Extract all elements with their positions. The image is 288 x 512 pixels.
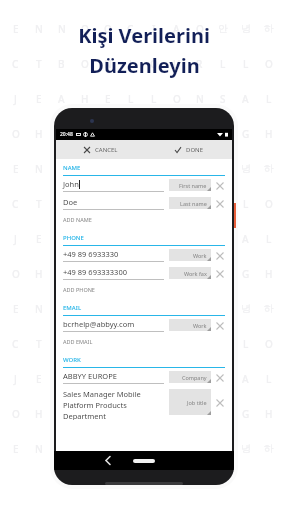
button[interactable]: +49 89 6933330 (63, 246, 225, 264)
staticText: 你 (126, 267, 136, 280)
staticText: O (81, 197, 89, 211)
staticText: 你 (126, 127, 136, 140)
button[interactable]: Company (169, 371, 211, 383)
button[interactable]: Delete field (214, 320, 225, 331)
staticText: L (266, 372, 272, 386)
button[interactable]: ADD NAME (63, 212, 225, 226)
button[interactable]: Doe (63, 194, 225, 212)
staticText: DONE (186, 146, 203, 154)
button[interactable]: First name (169, 179, 211, 191)
button[interactable]: bcrhelp@abbyy.com (63, 316, 225, 334)
button[interactable]: PHONE (63, 229, 225, 246)
button[interactable]: CANCEL (56, 140, 144, 159)
button[interactable]: EMAIL (63, 299, 225, 316)
staticText: J (129, 57, 132, 71)
button[interactable]: ADD PHONE (63, 282, 225, 296)
staticText: O (265, 197, 273, 211)
button[interactable]: Work (169, 319, 211, 331)
staticText: 하 (264, 22, 274, 35)
staticText: R (196, 57, 203, 71)
staticText: O (173, 372, 181, 386)
staticText: O (173, 232, 181, 246)
staticText: Q (81, 302, 89, 316)
button[interactable]: ADD EMAIL (63, 334, 225, 348)
staticText: O (12, 407, 20, 421)
staticText: S (220, 92, 226, 106)
button[interactable]: WORK (63, 351, 225, 368)
button[interactable]: +49 89 693333300 (63, 264, 225, 282)
button[interactable]: John (63, 176, 225, 194)
staticText: Job title (187, 399, 207, 406)
staticText: I (152, 162, 156, 176)
staticText: O (196, 302, 204, 316)
button[interactable]: NAME (63, 159, 225, 176)
button[interactable]: DONE (144, 140, 232, 159)
staticText: R (196, 197, 203, 211)
staticText: ADD NAME (63, 216, 92, 223)
staticText: E (13, 302, 19, 316)
staticText: B (58, 57, 65, 71)
button[interactable]: Work fax (169, 267, 211, 279)
button[interactable]: Work (169, 249, 211, 261)
staticText: N (58, 162, 66, 176)
button[interactable]: Delete field (214, 372, 225, 383)
staticText: L (82, 407, 88, 421)
button[interactable]: Delete field (214, 397, 225, 408)
staticText: B (173, 407, 180, 421)
staticText: C (12, 337, 19, 351)
button[interactable]: Delete field (214, 268, 225, 279)
staticText: 녕 (241, 162, 251, 175)
staticText: C (127, 302, 134, 316)
staticText: E (105, 92, 111, 106)
button[interactable]: Delete field (214, 180, 225, 191)
staticText: I (152, 302, 156, 316)
staticText: Q (81, 162, 89, 176)
button[interactable]: Delete field (214, 250, 225, 261)
staticText: A (173, 22, 180, 36)
button[interactable]: Delete field (214, 198, 225, 209)
staticText: N (35, 302, 43, 316)
staticText: 녕 (241, 442, 251, 455)
staticText: H (35, 267, 43, 281)
button[interactable]: Last name (169, 197, 211, 209)
staticText: A (173, 442, 180, 456)
staticText: N (58, 302, 66, 316)
staticText: O (196, 22, 204, 36)
staticText: ADD EMAIL (63, 338, 93, 345)
button[interactable]: Sales Manager Mobile (63, 386, 225, 420)
staticText: O (196, 267, 204, 281)
staticText: E (13, 162, 19, 176)
staticText: O (196, 442, 204, 456)
staticText: Platform Products (63, 400, 127, 410)
button[interactable]: ABBYY EUROPE (63, 368, 225, 386)
staticText: I (152, 22, 156, 36)
staticText: L (243, 197, 249, 211)
staticText: C (12, 197, 19, 211)
staticText: Department (63, 411, 106, 420)
staticText: N (35, 22, 43, 36)
staticText: S (220, 232, 226, 246)
staticText: N (58, 442, 66, 456)
staticText: Company (182, 374, 207, 381)
staticText: U (173, 197, 181, 211)
staticText: N (58, 22, 66, 36)
staticText: John (63, 179, 79, 189)
staticText: Q (81, 22, 89, 36)
staticText: O (150, 197, 158, 211)
button[interactable]: Job title (169, 389, 211, 415)
staticText: T (36, 337, 42, 351)
staticText: L (151, 372, 157, 386)
staticText: O (12, 267, 20, 281)
staticText: N (196, 232, 204, 246)
staticText: E (13, 442, 19, 456)
staticText: A (58, 92, 65, 106)
staticText: T (36, 197, 42, 211)
staticText: A (104, 267, 111, 281)
staticText: +49 89 693333300 (63, 267, 127, 277)
staticText: A (173, 162, 180, 176)
